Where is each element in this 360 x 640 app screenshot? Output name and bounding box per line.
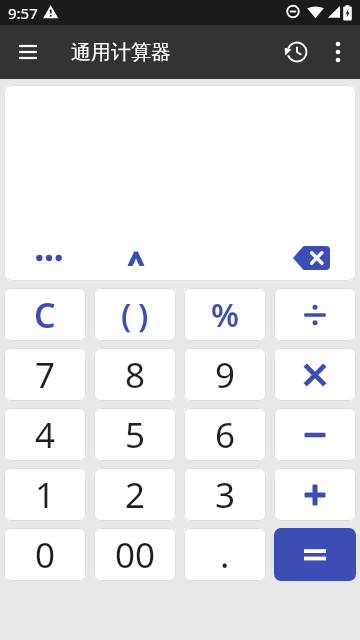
staticText: 7 bbox=[35, 351, 56, 399]
button[interactable]: 00 bbox=[94, 528, 176, 581]
staticText: 3 bbox=[215, 471, 236, 519]
button[interactable]: 9 bbox=[184, 348, 266, 401]
button[interactable]: 0 bbox=[4, 528, 86, 581]
staticText: 00 bbox=[115, 531, 156, 579]
button[interactable]: 2 bbox=[94, 468, 176, 521]
button[interactable] bbox=[274, 408, 356, 461]
button[interactable] bbox=[280, 36, 312, 68]
staticText: 2 bbox=[125, 471, 146, 519]
staticText: 通用计算器 bbox=[71, 40, 171, 65]
staticText: 0 bbox=[35, 531, 56, 579]
button[interactable]: 6 bbox=[184, 408, 266, 461]
button[interactable]: 3 bbox=[184, 468, 266, 521]
staticText: 8 bbox=[125, 351, 146, 399]
button[interactable] bbox=[4, 237, 94, 279]
button[interactable]: 8 bbox=[94, 348, 176, 401]
button[interactable]: 5 bbox=[94, 408, 176, 461]
staticText: ( bbox=[121, 293, 132, 337]
button[interactable]: 7 bbox=[4, 348, 86, 401]
button[interactable]: C bbox=[4, 288, 86, 341]
button[interactable]: ( bbox=[94, 288, 176, 341]
button[interactable] bbox=[12, 36, 44, 68]
button[interactable] bbox=[266, 237, 356, 279]
staticText: ) bbox=[138, 293, 149, 337]
staticText: 9 bbox=[215, 351, 236, 399]
staticText: . bbox=[220, 531, 230, 579]
button[interactable]: . bbox=[184, 528, 266, 581]
staticText: 1 bbox=[35, 471, 56, 519]
button[interactable]: 4 bbox=[4, 408, 86, 461]
staticText: C bbox=[34, 292, 56, 338]
button[interactable] bbox=[94, 237, 178, 279]
button[interactable] bbox=[274, 288, 356, 341]
button[interactable]: % bbox=[184, 288, 266, 341]
button[interactable]: 1 bbox=[4, 468, 86, 521]
staticText: 6 bbox=[215, 411, 236, 459]
staticText: 9:57 bbox=[8, 3, 38, 23]
button[interactable] bbox=[274, 528, 356, 581]
button[interactable] bbox=[322, 36, 354, 68]
staticText: % bbox=[211, 293, 240, 337]
button[interactable] bbox=[274, 348, 356, 401]
button[interactable] bbox=[274, 468, 356, 521]
staticText: 5 bbox=[125, 411, 146, 459]
staticText: 4 bbox=[35, 411, 56, 459]
